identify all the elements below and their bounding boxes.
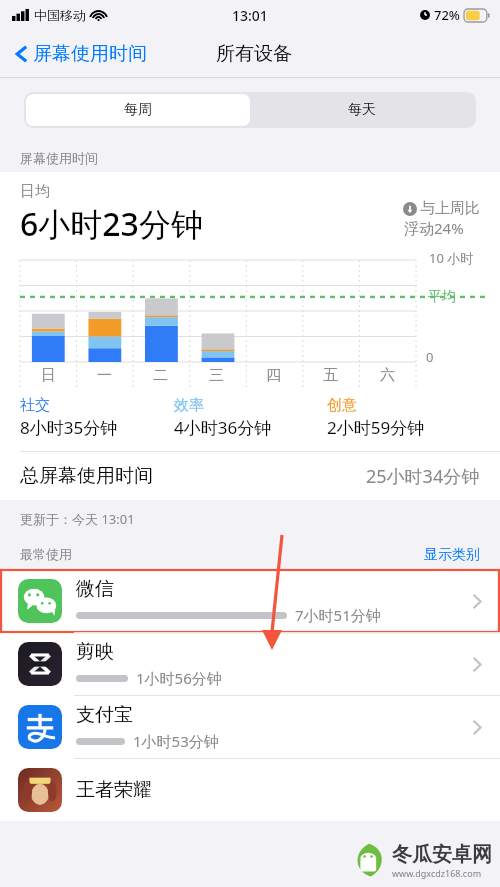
staticText: 支付宝 <box>76 703 133 727</box>
staticText: 25小时34分钟 <box>366 464 480 489</box>
staticText: 六 <box>380 366 395 385</box>
button[interactable]: 支付宝 <box>0 696 500 758</box>
staticText: 效率 <box>174 396 204 415</box>
staticText: 与上周比 <box>420 199 480 218</box>
staticText: 屏幕使用时间 <box>20 150 98 166</box>
staticText: 1小时56分钟 <box>136 668 222 688</box>
staticText: 王者荣耀 <box>76 778 152 802</box>
button[interactable]: 每天 <box>250 94 474 126</box>
staticText: 屏幕使用时间 <box>33 42 147 66</box>
staticText: 一 <box>97 366 112 385</box>
button[interactable]: 屏幕使用时间 <box>12 38 151 70</box>
button[interactable]: 王者荣耀 <box>0 759 500 821</box>
staticText: 1小时53分钟 <box>133 731 219 751</box>
button[interactable]: 每周 <box>26 94 250 126</box>
staticText: 10 小时 <box>429 249 474 267</box>
staticText: 三 <box>209 366 224 385</box>
staticText: 8小时35分钟 <box>20 416 118 439</box>
staticText: www.dgxcdz168.com <box>392 867 482 879</box>
button[interactable]: 微信 <box>0 570 500 632</box>
staticText: 总屏幕使用时间 <box>20 464 153 488</box>
staticText: 社交 <box>20 396 50 415</box>
staticText: 更新于：今天 13:01 <box>20 510 135 528</box>
staticText: 二 <box>153 366 168 385</box>
staticText: 7小时51分钟 <box>295 605 381 625</box>
staticText: 四 <box>266 366 281 385</box>
staticText: 中国移动 <box>34 7 86 23</box>
staticText: 所有设备 <box>216 42 292 66</box>
staticText: 13:01 <box>232 6 268 25</box>
staticText: 日 <box>41 366 56 385</box>
staticText: 平均 <box>428 288 456 306</box>
staticText: 4小时36分钟 <box>174 416 272 439</box>
staticText: 微信 <box>76 577 114 601</box>
button[interactable]: 总屏幕使用时间 <box>0 452 500 500</box>
staticText: 最常使用 <box>20 546 72 562</box>
staticText: 剪映 <box>76 640 114 664</box>
staticText: 每周 <box>124 101 152 119</box>
staticText: 五 <box>323 366 338 385</box>
button[interactable]: 剪映 <box>0 633 500 695</box>
staticText: 6小时23分钟 <box>20 202 203 246</box>
staticText: 浮动24% <box>404 218 464 238</box>
staticText: 创意 <box>327 396 357 415</box>
button[interactable]: 显示类别 <box>424 546 480 564</box>
staticText: 72% <box>434 6 460 24</box>
staticText: 日均 <box>20 182 50 201</box>
staticText: 每天 <box>348 101 376 119</box>
staticText: 显示类别 <box>424 546 480 564</box>
staticText: 冬瓜安卓网 <box>392 842 492 867</box>
staticText: 0 <box>426 348 434 366</box>
staticText: 2小时59分钟 <box>327 416 425 439</box>
